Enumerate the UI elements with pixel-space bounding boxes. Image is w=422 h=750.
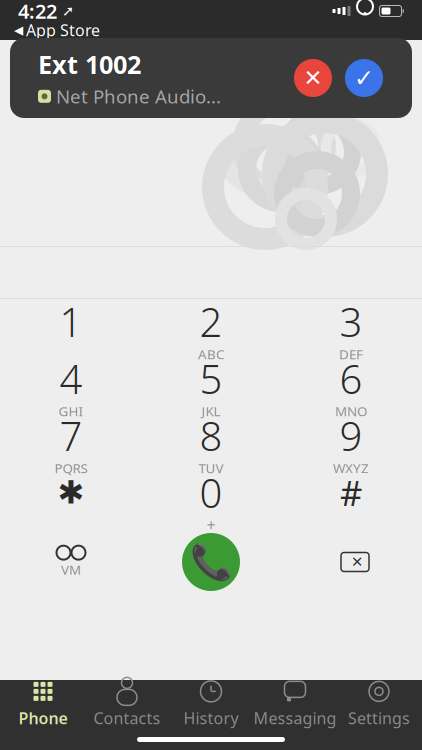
button[interactable]: Call (141, 527, 281, 597)
button[interactable]: 8 (141, 413, 281, 470)
staticText: 📞 (189, 542, 232, 582)
button[interactable]: Voicemail (1, 527, 141, 597)
staticText: 3 (339, 295, 362, 348)
staticText: WXYZ (333, 459, 369, 477)
staticText: ✓ (354, 64, 374, 92)
staticText: 8 (199, 409, 222, 462)
button[interactable]: Phone (1, 681, 85, 727)
staticText: VM (61, 561, 81, 578)
staticText: 4 (59, 352, 82, 405)
staticText: Ext 1002 (38, 47, 141, 81)
staticText: Settings (348, 707, 410, 729)
staticText: Messaging (253, 707, 336, 729)
button[interactable]: Decline call (294, 59, 332, 97)
button[interactable]: Contacts (85, 681, 169, 727)
staticText: ABC (198, 345, 224, 363)
staticText: ✕ (303, 65, 322, 91)
button[interactable]: 6 (281, 356, 421, 413)
staticText: Contacts (93, 707, 160, 729)
button[interactable]: Settings (337, 681, 421, 727)
button[interactable]: Delete (281, 527, 421, 597)
staticText: TUV (198, 459, 223, 477)
staticText: 0 (199, 466, 222, 519)
staticText: ◀ (14, 23, 23, 37)
staticText: 9 (339, 409, 362, 462)
staticText: # (340, 469, 362, 515)
staticText: 1 (59, 295, 82, 348)
staticText: 2 (199, 295, 222, 348)
button[interactable]: 9 (281, 413, 421, 470)
button[interactable]: 7 (1, 413, 141, 470)
button[interactable]: 4 (1, 356, 141, 413)
button[interactable]: History (169, 681, 253, 727)
staticText: PQRS (54, 459, 87, 477)
staticText: GHI (58, 402, 83, 420)
button[interactable]: Pound (281, 470, 421, 527)
staticText: History (183, 707, 238, 729)
staticText: 6 (339, 352, 362, 405)
staticText: ✕ (351, 554, 363, 570)
staticText: ✱ (57, 474, 84, 511)
button[interactable]: 1 (1, 299, 141, 356)
staticText: 7 (59, 409, 82, 462)
staticText: App Store (26, 19, 100, 41)
staticText: Phone (18, 707, 67, 729)
staticText: DEF (339, 345, 363, 363)
button[interactable]: Messaging (253, 681, 337, 727)
button[interactable]: Accept call (332, 59, 383, 97)
staticText: + (206, 514, 215, 536)
staticText: Net Phone Audio... (56, 84, 221, 109)
button[interactable]: 2 (141, 299, 281, 356)
staticText: MNO (335, 402, 367, 420)
staticText: 5 (199, 352, 222, 405)
button[interactable]: Star (1, 470, 141, 527)
staticText: 4:22 (18, 0, 57, 24)
button[interactable]: 0 (141, 470, 281, 527)
staticText: JKL (201, 402, 220, 420)
staticText: ➚ (57, 3, 74, 19)
button[interactable]: 3 (281, 299, 421, 356)
button[interactable]: 5 (141, 356, 281, 413)
